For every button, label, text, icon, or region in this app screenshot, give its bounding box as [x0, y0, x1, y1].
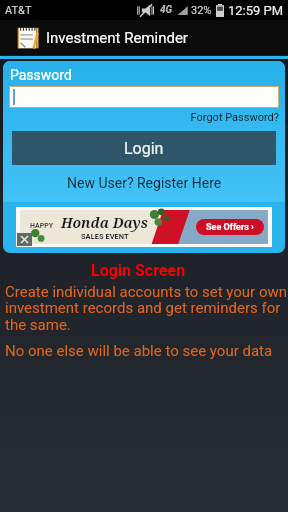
staticText: Login Screen	[91, 261, 186, 280]
staticText: Forgot Password?	[3, 111, 279, 124]
staticText: 32%	[191, 4, 212, 17]
staticText: HAPPY	[30, 222, 54, 230]
button[interactable]	[10, 87, 278, 107]
staticText: Create individual accounts to set your o…	[5, 283, 288, 334]
button[interactable]: Forgot Password?	[3, 111, 285, 124]
button[interactable]: HAPPY	[17, 208, 271, 246]
staticText: Login	[124, 139, 164, 158]
staticText: Honda Days	[61, 213, 148, 232]
staticText: Password	[10, 67, 72, 83]
staticText: No one else will be able to see your dat…	[5, 342, 273, 360]
staticText: 4G	[160, 4, 173, 16]
button[interactable]: New User? Register Here	[3, 175, 285, 191]
staticText: SALES EVENT	[81, 232, 129, 241]
staticText: 12:59 PM	[228, 3, 284, 18]
staticText: Investment Reminder	[46, 29, 188, 47]
staticText: New User? Register Here	[67, 175, 222, 191]
button[interactable]: Close ad	[17, 233, 32, 246]
button[interactable]: Login	[12, 131, 276, 165]
staticText: See Offers ›	[206, 222, 254, 233]
staticText: AT&T	[5, 4, 32, 17]
button[interactable]: See Offers ›	[196, 219, 264, 235]
